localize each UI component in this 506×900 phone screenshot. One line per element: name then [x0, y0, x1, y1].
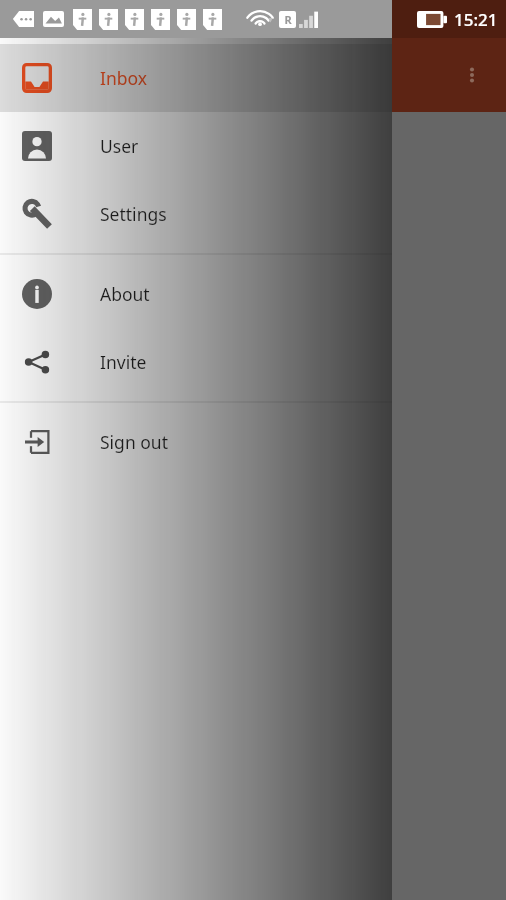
- button[interactable]: Settings: [0, 180, 392, 248]
- button[interactable]: Sign out: [0, 408, 392, 476]
- button[interactable]: User: [0, 112, 392, 180]
- staticText: User: [100, 134, 139, 158]
- staticText: About: [100, 282, 150, 306]
- button[interactable]: Inbox: [0, 44, 392, 112]
- staticText: R: [284, 12, 292, 27]
- staticText: Sign out: [100, 430, 168, 454]
- button[interactable]: About: [0, 260, 392, 328]
- staticText: 15:21: [454, 8, 498, 31]
- button[interactable]: More options: [448, 51, 496, 99]
- staticText: m API.: [330, 723, 379, 745]
- button[interactable]: Invite: [0, 328, 392, 396]
- staticText: Invite: [100, 350, 147, 374]
- staticText: Inbox: [100, 66, 148, 90]
- staticText: Settings: [100, 202, 167, 226]
